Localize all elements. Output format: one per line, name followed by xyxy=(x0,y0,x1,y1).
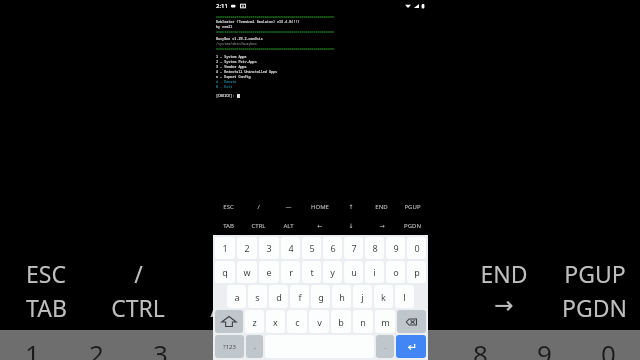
button[interactable]: x xyxy=(266,310,285,333)
staticText: [CHOICE]: xyxy=(216,93,237,98)
button[interactable]: ← xyxy=(304,216,335,235)
staticText: n xyxy=(360,316,366,328)
staticText: → xyxy=(494,292,514,319)
button[interactable]: 4 xyxy=(281,237,300,259)
button[interactable]: / xyxy=(243,197,273,216)
button[interactable]: y xyxy=(323,261,342,283)
button[interactable]: PGDN xyxy=(397,216,428,235)
button[interactable]: o xyxy=(386,261,405,283)
staticText: q xyxy=(222,266,228,278)
button[interactable]: CTRL xyxy=(243,216,273,235)
staticText: 3 xyxy=(153,336,168,360)
button[interactable]: Enter xyxy=(396,335,426,358)
staticText: 7 xyxy=(351,242,357,254)
staticText: — xyxy=(285,203,292,211)
button[interactable]: l xyxy=(395,285,414,308)
button[interactable]: d xyxy=(269,285,288,308)
staticText: m xyxy=(381,316,390,328)
button[interactable]: t xyxy=(302,261,321,283)
staticText: ↑ xyxy=(403,258,423,285)
staticText: / xyxy=(134,258,143,289)
staticText: ?123 xyxy=(223,343,236,351)
button[interactable]: ESC xyxy=(213,197,243,216)
button[interactable]: 3 xyxy=(259,237,279,259)
staticText: 5 xyxy=(309,242,315,254)
button[interactable]: i xyxy=(365,261,384,283)
staticText: / xyxy=(257,203,260,211)
button[interactable]: h xyxy=(332,285,351,308)
staticText: f xyxy=(298,291,302,303)
button[interactable]: z xyxy=(245,310,264,333)
button[interactable]: Backspace xyxy=(397,310,426,333)
staticText: 9 xyxy=(537,336,552,360)
button[interactable]: 7 xyxy=(344,237,363,259)
staticText: 1 - System Apps xyxy=(216,54,247,59)
button[interactable]: , xyxy=(246,335,263,358)
button[interactable]: p xyxy=(407,261,426,283)
button[interactable]: → xyxy=(366,216,397,235)
staticText: j xyxy=(361,291,364,303)
button[interactable]: g xyxy=(311,285,330,308)
button[interactable]: END xyxy=(366,197,397,216)
staticText: ========================================… xyxy=(216,46,334,51)
staticText: 4 - Reinstall Uninstalled Apps xyxy=(216,69,278,74)
button[interactable]: u xyxy=(344,261,363,283)
staticText: i xyxy=(373,266,376,278)
button[interactable]: 8 xyxy=(365,237,384,259)
button[interactable]: ↑ xyxy=(335,197,366,216)
staticText: ALT xyxy=(283,222,294,230)
button[interactable]: 9 xyxy=(386,237,405,259)
button[interactable]: PGUP xyxy=(397,197,428,216)
staticText: ESC xyxy=(26,258,66,289)
staticText: v xyxy=(317,316,322,328)
staticText: s xyxy=(255,291,260,303)
button[interactable]: 0 xyxy=(407,237,426,259)
button[interactable]: 1 xyxy=(215,237,235,259)
button[interactable]: — xyxy=(273,197,304,216)
button[interactable]: ?123 xyxy=(215,335,244,358)
button[interactable]: k xyxy=(374,285,393,308)
staticText: h xyxy=(339,291,345,303)
button[interactable]: n xyxy=(353,310,373,333)
button[interactable]: f xyxy=(290,285,309,308)
staticText: r xyxy=(289,266,293,278)
button[interactable]: 2 xyxy=(237,237,257,259)
staticText: CTRL xyxy=(111,292,165,323)
button[interactable]: b xyxy=(331,310,351,333)
staticText: 0 xyxy=(601,336,616,360)
staticText: b xyxy=(338,316,344,328)
staticText: TAB xyxy=(223,222,234,230)
button[interactable]: ALT xyxy=(273,216,304,235)
staticText: HOME xyxy=(311,203,329,211)
staticText: p xyxy=(414,266,420,278)
button[interactable]: c xyxy=(287,310,307,333)
button[interactable]: 5 xyxy=(302,237,321,259)
staticText: /system/xbin/busybox xyxy=(216,41,257,46)
button[interactable]: . xyxy=(376,335,394,358)
button[interactable]: TAB xyxy=(213,216,243,235)
button[interactable]: HOME xyxy=(304,197,335,216)
button[interactable]: m xyxy=(375,310,395,333)
button[interactable]: ↓ xyxy=(335,216,366,235)
staticText: 0 - Exit xyxy=(216,84,233,89)
staticText: 6 xyxy=(345,336,360,360)
button[interactable]: q xyxy=(215,261,235,283)
staticText: 4 xyxy=(217,336,232,360)
staticText: l xyxy=(403,291,406,303)
button[interactable]: Shift xyxy=(215,310,243,333)
button[interactable]: w xyxy=(237,261,257,283)
staticText: 2 xyxy=(89,336,104,360)
button[interactable]: s xyxy=(248,285,267,308)
staticText: 7 xyxy=(409,336,424,360)
button[interactable]: e xyxy=(259,261,279,283)
button[interactable]: a xyxy=(227,285,246,308)
staticText: c xyxy=(295,316,300,328)
button[interactable]: v xyxy=(309,310,329,333)
staticText: d xyxy=(276,291,282,303)
button[interactable]: j xyxy=(353,285,372,308)
staticText: g xyxy=(318,291,324,303)
staticText: e - Export Config xyxy=(216,74,251,79)
button[interactable]: 6 xyxy=(323,237,342,259)
button[interactable]: r xyxy=(281,261,300,283)
